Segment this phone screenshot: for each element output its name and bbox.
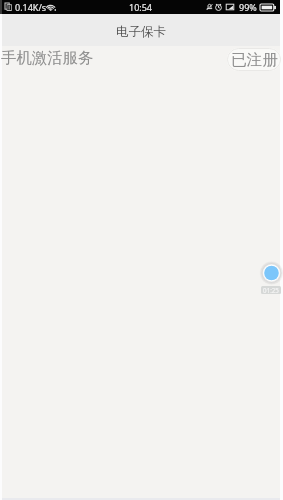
staticText: 已注册 — [231, 50, 278, 70]
staticText: 手机激活服务 — [1, 48, 94, 67]
staticText: 01:25 — [263, 286, 279, 294]
button[interactable]: Screen recorder — [255, 257, 283, 289]
button[interactable]: 已注册 — [227, 48, 281, 71]
staticText: 10:54 — [129, 1, 153, 13]
staticText: 0.14K/s — [15, 1, 47, 13]
staticText: 99% — [239, 1, 257, 13]
staticText: 电子保卡 — [116, 24, 166, 40]
button[interactable]: 手机激活服务 — [2, 46, 280, 76]
